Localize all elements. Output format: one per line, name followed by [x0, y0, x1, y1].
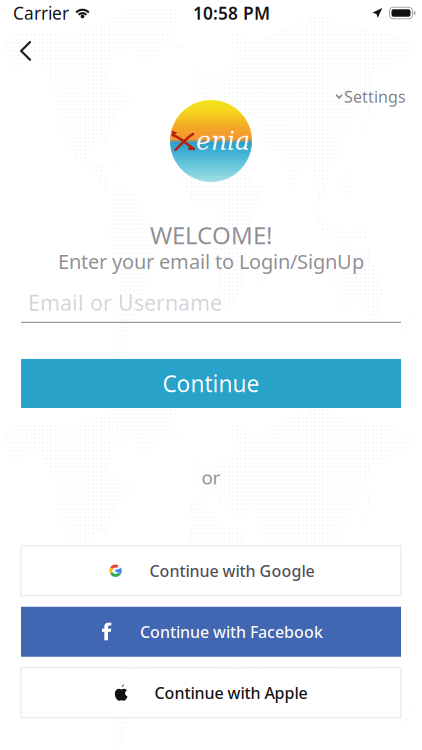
button[interactable]: Continue with Google: [21, 546, 401, 596]
staticText: Carrier: [13, 1, 69, 24]
button[interactable]: Continue with Facebook: [21, 607, 401, 657]
button[interactable]: Back: [10, 31, 41, 71]
staticText: enia: [196, 126, 250, 156]
staticText: Email or Username: [28, 288, 222, 317]
staticText: Continue with Facebook: [140, 621, 323, 642]
staticText: Enter your email to Login/SignUp: [58, 248, 364, 274]
staticText: Continue: [162, 368, 259, 398]
staticText: WELCOME!: [150, 219, 272, 251]
staticText: or: [201, 465, 220, 490]
staticText: Continue with Apple: [154, 682, 307, 703]
button[interactable]: Continue: [21, 359, 401, 408]
staticText: Continue with Google: [149, 560, 314, 581]
staticText: Settings: [344, 86, 406, 107]
staticText: 10:58 PM: [193, 1, 270, 24]
button[interactable]: Continue with Apple: [21, 668, 401, 718]
button[interactable]: Settings: [331, 80, 411, 113]
